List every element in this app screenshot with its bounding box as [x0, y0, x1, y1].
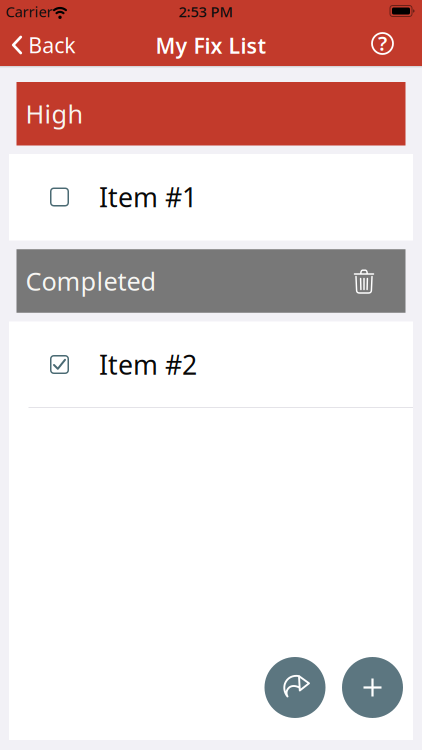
staticText: High	[25, 97, 83, 130]
staticText: Item #1	[99, 179, 197, 215]
button[interactable]: Item #1	[9, 154, 413, 240]
staticText: ?	[378, 30, 387, 56]
staticText: Completed	[25, 264, 156, 298]
staticText: Carrier	[5, 2, 52, 21]
staticText: Back	[28, 31, 75, 59]
staticText: My Fix List	[155, 31, 266, 60]
button[interactable]: Item #2	[9, 321, 413, 407]
button[interactable]: Share list	[264, 657, 325, 718]
button[interactable]: Delete completed items	[354, 268, 374, 294]
button[interactable]: Back	[12, 24, 75, 66]
button[interactable]: Add item	[342, 657, 403, 718]
staticText: 2:53 PM	[178, 2, 232, 21]
button[interactable]: Help	[371, 32, 393, 54]
staticText: Item #2	[99, 347, 197, 382]
